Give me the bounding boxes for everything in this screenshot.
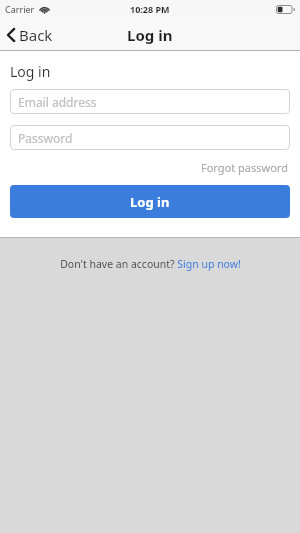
- button[interactable]: Don't have an account? Sign up now!: [0, 257, 300, 271]
- staticText: Password: [18, 130, 73, 146]
- button[interactable]: Email address: [10, 89, 290, 114]
- button[interactable]: Forgot password: [199, 158, 290, 177]
- button[interactable]: Log in: [10, 185, 290, 218]
- staticText: Log in: [127, 25, 173, 45]
- button[interactable]: Back: [0, 18, 65, 51]
- staticText: Log in: [130, 193, 170, 211]
- staticText: Don't have an account? Sign up now!: [60, 257, 241, 271]
- staticText: Email address: [18, 94, 97, 110]
- button[interactable]: Password: [10, 125, 290, 150]
- staticText: 10:28 PM: [130, 3, 170, 15]
- staticText: Log in: [10, 62, 51, 81]
- staticText: Back: [19, 25, 53, 45]
- other: Back: [7, 28, 15, 42]
- staticText: Carrier: [5, 3, 35, 15]
